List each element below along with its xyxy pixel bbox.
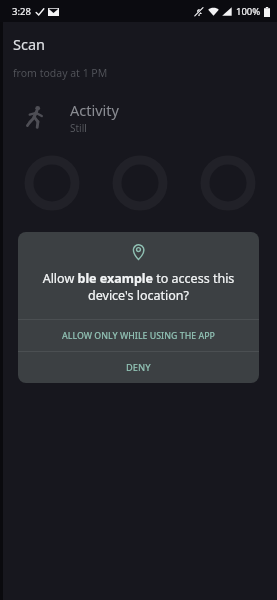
staticText: 100% [236,5,261,18]
staticText: DENY [126,361,151,374]
other: Activity icon [24,105,48,129]
button[interactable]: ALLOW ONLY WHILE USING THE APP [18,320,259,351]
button[interactable]: DENY [18,352,259,383]
button[interactable]: Metric ring [24,155,80,211]
staticText: ALLOW ONLY WHILE USING THE APP [62,330,215,342]
staticText: 3:28 [12,5,31,18]
button[interactable]: Activity icon [0,92,277,142]
staticText: Activity [70,100,119,120]
button[interactable]: Metric ring [112,155,168,211]
staticText: from today at 1 PM [13,66,108,80]
button[interactable]: Metric ring [200,155,256,211]
staticText: Still [70,121,87,135]
staticText: Scan [13,34,46,54]
staticText: Allow ble example to access this device'… [31,270,246,304]
